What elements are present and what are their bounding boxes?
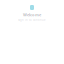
staticText: Welcome bbox=[23, 12, 41, 17]
staticText: Sign in to continue bbox=[18, 18, 46, 22]
